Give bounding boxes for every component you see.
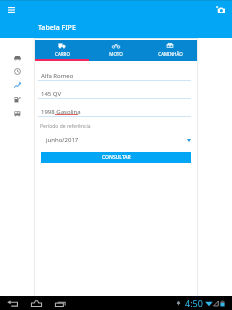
staticText: Tabela FIPE	[38, 23, 76, 33]
button[interactable]: Alfa Romeo	[35, 65, 197, 81]
button[interactable]: 145 QV	[35, 83, 197, 99]
button[interactable]: 1998 Gasolina	[35, 101, 197, 117]
staticText: CONSULTAR	[102, 154, 131, 161]
staticText: 4:50	[185, 297, 203, 309]
button[interactable]: Fuel prices	[0, 92, 34, 106]
button[interactable]: CAMINHÃO	[143, 40, 197, 61]
button[interactable]: CONSULTAR	[41, 152, 191, 163]
staticText: junho/2017	[46, 136, 79, 144]
staticText: CARRO	[55, 51, 70, 57]
button[interactable]: Vehicle list	[0, 50, 34, 64]
button[interactable]: Statistics	[0, 78, 34, 92]
button[interactable]: History	[0, 64, 34, 78]
button[interactable]: Home	[29, 296, 43, 310]
button[interactable]: CARRO	[35, 40, 89, 61]
button[interactable]: Dealers	[0, 106, 34, 120]
staticText: MOTO	[109, 51, 123, 57]
button[interactable]: Open navigation drawer	[3, 2, 19, 18]
button[interactable]: MOTO	[89, 40, 143, 61]
button[interactable]: Recent apps	[53, 296, 67, 310]
staticText: 1998 Gasolina	[41, 108, 81, 116]
button[interactable]: Back	[5, 296, 19, 310]
staticText: Período de referência	[40, 123, 91, 130]
staticText: 145 QV	[41, 90, 62, 98]
staticText: CAMINHÃO	[158, 51, 183, 57]
button[interactable]: Take photo	[212, 2, 228, 18]
staticText: Alfa Romeo	[41, 72, 74, 80]
button[interactable]: junho/2017	[35, 134, 197, 146]
